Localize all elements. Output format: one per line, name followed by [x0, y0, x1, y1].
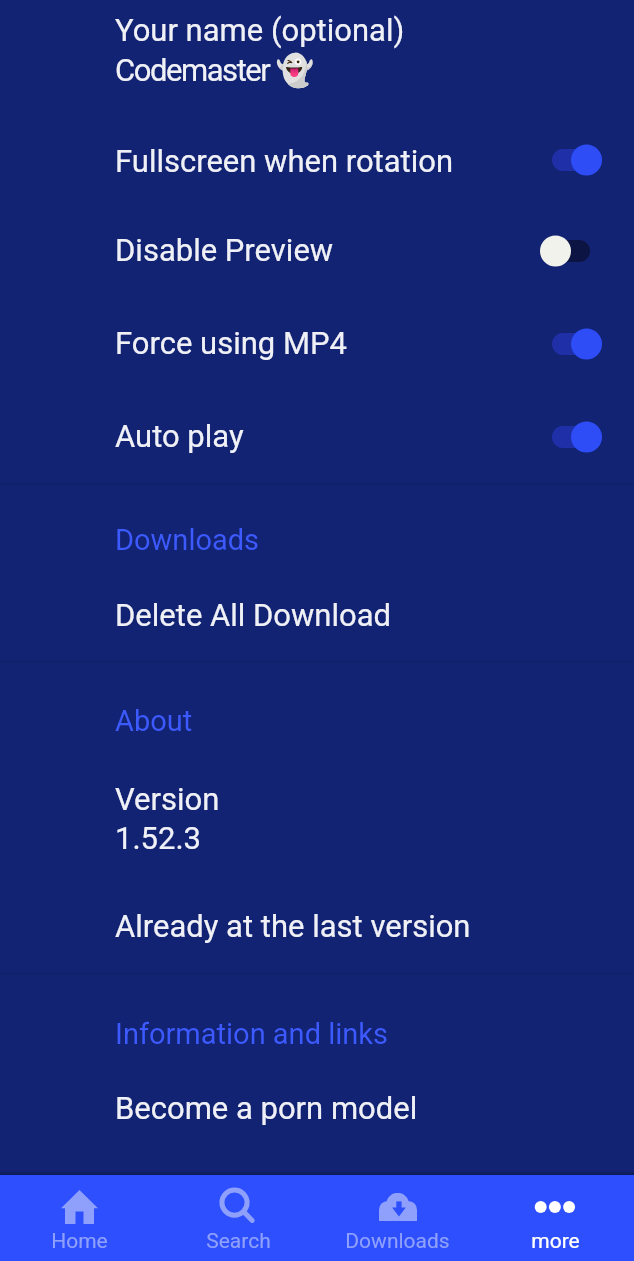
staticText: Delete All Download	[115, 597, 392, 633]
staticText: Information and links	[115, 1017, 388, 1051]
staticText: more	[477, 1229, 634, 1254]
button[interactable]: more	[477, 1175, 634, 1261]
button[interactable]: Become a porn model	[0, 1061, 634, 1151]
staticText: Fullscreen when rotation	[115, 143, 454, 179]
button[interactable]: Search	[159, 1175, 318, 1261]
staticText: Your name (optional)	[115, 12, 405, 48]
staticText: Home	[0, 1229, 159, 1254]
button[interactable]: Information and links	[0, 975, 634, 1061]
staticText: Force using MP4	[115, 325, 347, 361]
staticText: 1.52.3	[115, 820, 202, 856]
staticText: Search	[159, 1229, 318, 1254]
staticText: Downloads	[115, 523, 260, 557]
staticText: About	[115, 704, 193, 738]
button[interactable]: About	[0, 663, 634, 749]
button[interactable]: Version	[0, 749, 634, 883]
button[interactable]: Downloads	[0, 485, 634, 571]
button[interactable]: Your name (optional)	[0, 0, 634, 102]
staticText: Already at the last version	[115, 908, 471, 944]
staticText: Disable Preview	[115, 232, 334, 268]
button[interactable]: Home	[0, 1175, 159, 1261]
button[interactable]: Fullscreen when rotation	[0, 115, 634, 207]
button[interactable]: Auto play	[0, 391, 634, 483]
staticText: Downloads	[318, 1229, 477, 1254]
staticText: Version	[115, 781, 220, 817]
button[interactable]: Already at the last version	[0, 883, 634, 973]
staticText: Codemaster 👻	[115, 52, 313, 88]
staticText: Become a porn model	[115, 1090, 418, 1126]
button[interactable]: Downloads	[318, 1175, 477, 1261]
button[interactable]: Disable Preview	[0, 207, 634, 299]
button[interactable]: Force using MP4	[0, 299, 634, 391]
button[interactable]: Delete All Download	[0, 571, 634, 661]
staticText: Auto play	[115, 418, 244, 454]
